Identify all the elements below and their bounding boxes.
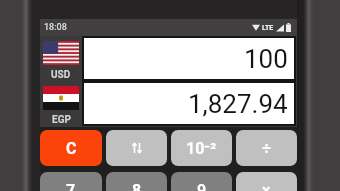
staticText: USD xyxy=(51,69,71,81)
button[interactable]: C xyxy=(40,130,102,166)
button[interactable]: 1,827.94 xyxy=(84,83,294,124)
staticText: EGP xyxy=(52,114,71,126)
button[interactable]: 100 xyxy=(84,38,294,79)
button[interactable]: Swap currencies xyxy=(106,130,167,166)
staticText: 8 xyxy=(132,181,142,191)
button[interactable]: 8 xyxy=(106,172,167,191)
staticText: C xyxy=(66,139,77,158)
staticText: ÷ xyxy=(262,139,272,158)
button[interactable]: 9 xyxy=(171,172,232,191)
staticText: LTE xyxy=(262,24,274,32)
staticText: 18:08 xyxy=(44,22,67,33)
staticText: 1,827.94 xyxy=(188,89,288,119)
staticText: 9 xyxy=(197,181,207,191)
other: Signal xyxy=(276,24,284,32)
staticText: × xyxy=(262,181,271,191)
other: Battery xyxy=(286,23,291,32)
button[interactable]: 10⁻² xyxy=(171,130,232,166)
staticText: 100 xyxy=(244,44,288,74)
button[interactable]: ÷ xyxy=(236,130,297,166)
button[interactable]: 7 xyxy=(40,172,102,191)
other: Swap currencies xyxy=(130,141,144,155)
other: Wifi xyxy=(252,24,260,31)
button[interactable]: × xyxy=(236,172,297,191)
staticText: 7 xyxy=(66,181,76,191)
staticText: 10⁻² xyxy=(186,139,217,158)
